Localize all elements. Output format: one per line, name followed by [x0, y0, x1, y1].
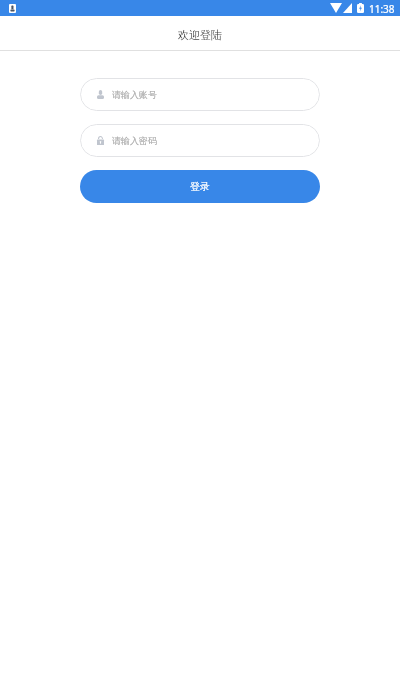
- staticText: 11:38: [369, 2, 395, 16]
- other: Wi-Fi: [330, 3, 342, 13]
- other: Account: [97, 90, 104, 99]
- staticText: 请输入账号: [112, 89, 157, 100]
- other: Password: [97, 136, 104, 145]
- button[interactable]: Password: [80, 124, 320, 157]
- staticText: 请输入密码: [112, 135, 157, 146]
- button[interactable]: Account: [80, 78, 320, 111]
- other: Battery charging: [357, 3, 364, 13]
- other: Notification: [9, 4, 16, 13]
- button[interactable]: 登录: [80, 170, 320, 203]
- other: Signal: [343, 3, 352, 13]
- staticText: 登录: [190, 180, 210, 193]
- staticText: 欢迎登陆: [178, 28, 222, 42]
